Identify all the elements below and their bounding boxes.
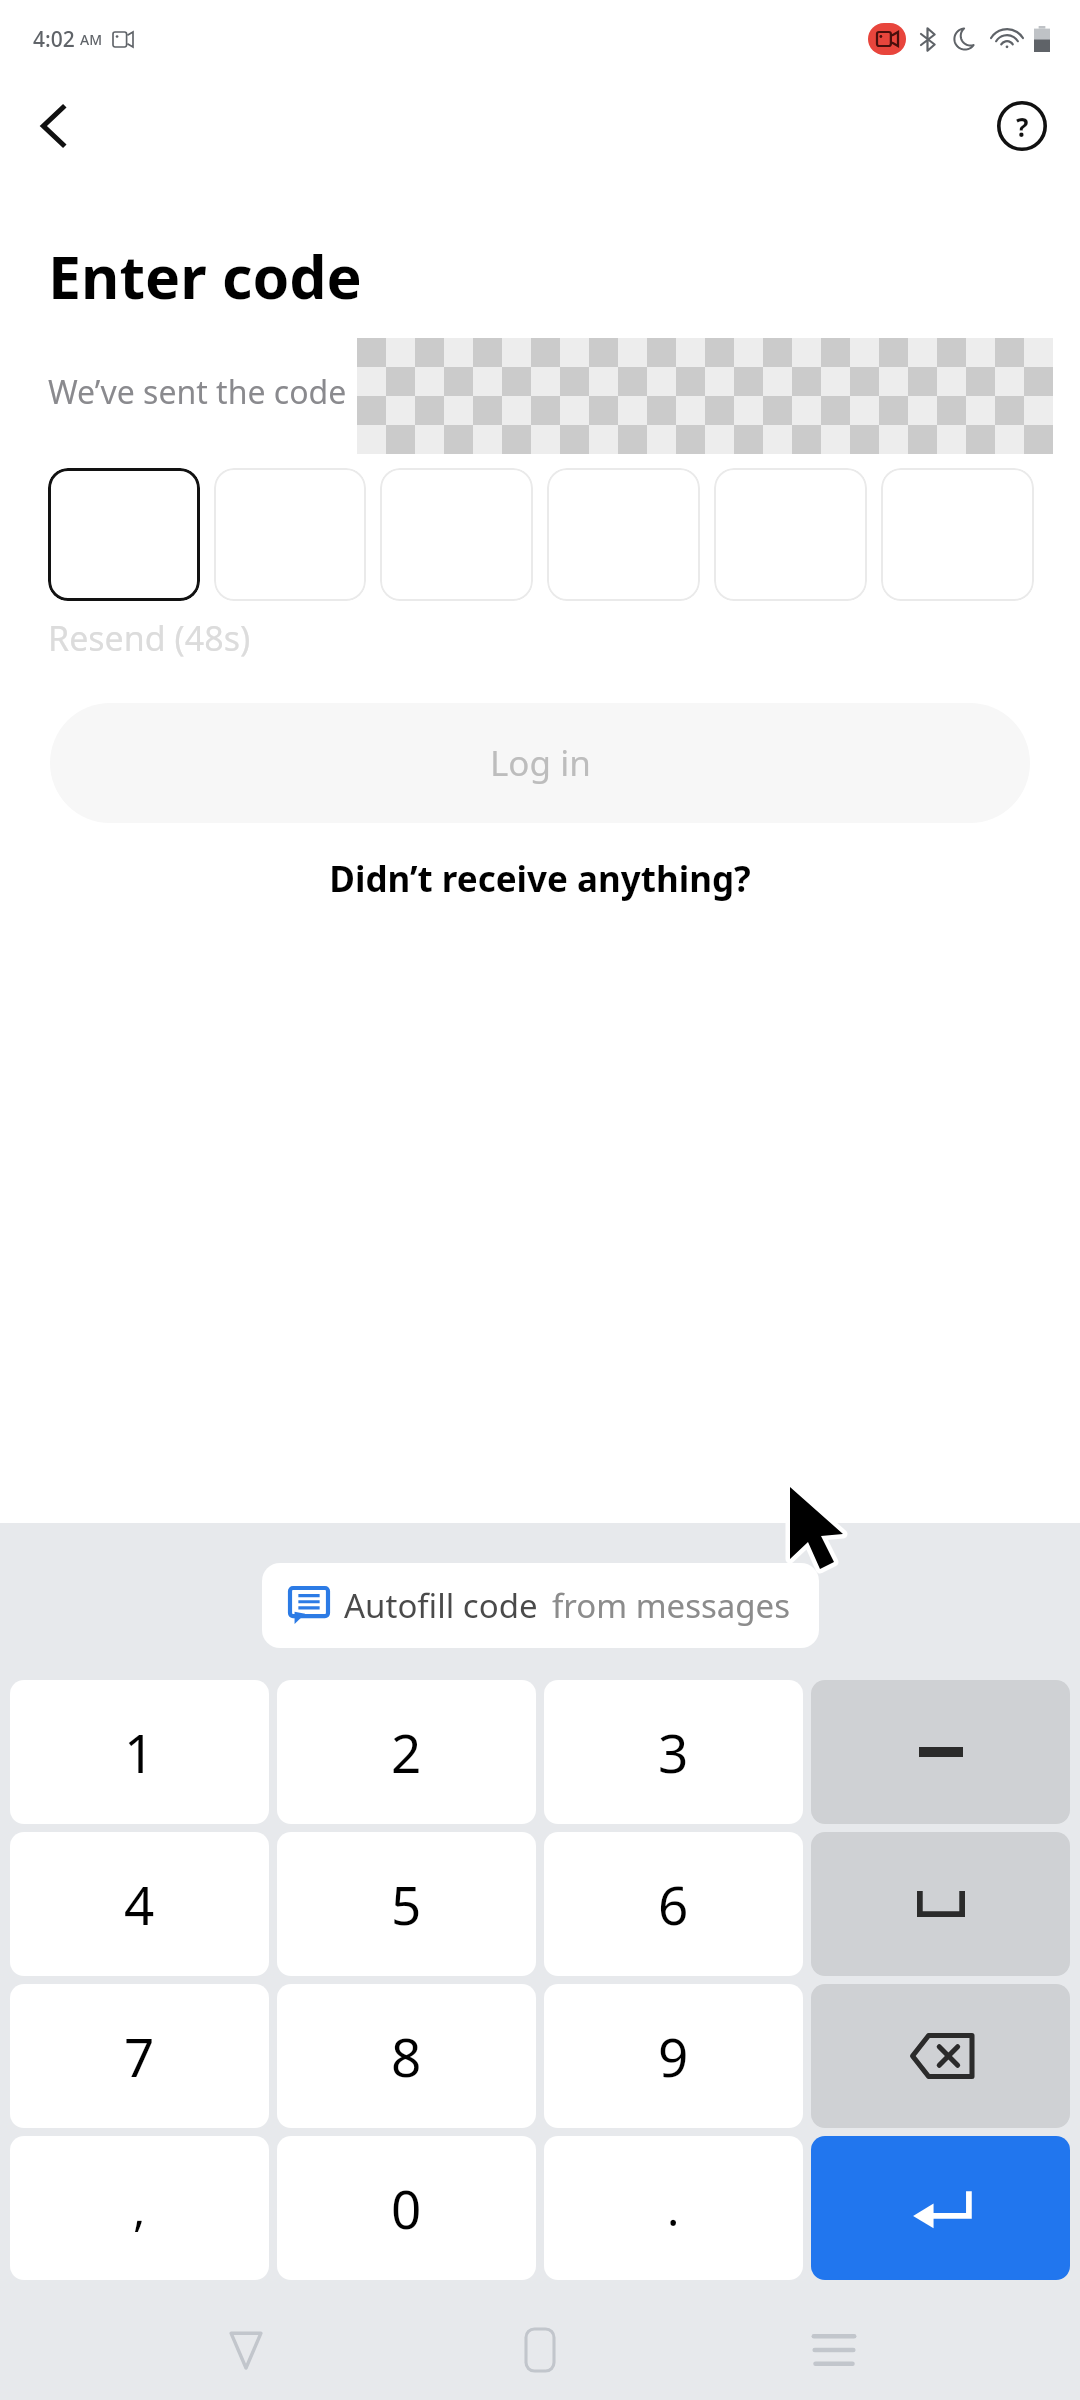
staticText: Enter code <box>48 236 362 316</box>
button[interactable]: 1 <box>10 1680 269 1824</box>
staticText: 1 <box>124 1716 155 1788</box>
button[interactable]: 9 <box>544 1984 803 2128</box>
button[interactable]: 4 <box>10 1832 269 1976</box>
staticText: from messages <box>552 1583 791 1628</box>
button[interactable]: Code digit 2 <box>214 468 366 601</box>
button[interactable]: Log in <box>50 703 1030 823</box>
button[interactable]: Code digit 1 <box>48 468 200 601</box>
staticText: 7 <box>124 2020 155 2092</box>
staticText: 4 <box>124 1868 155 1940</box>
staticText: , <box>133 2177 146 2240</box>
staticText: 2 <box>391 1716 422 1788</box>
button[interactable]: Back <box>20 92 88 160</box>
button[interactable]: 6 <box>544 1832 803 1976</box>
button[interactable]: Backspace <box>811 1984 1070 2128</box>
button[interactable]: Help <box>988 92 1056 160</box>
staticText: Log in <box>490 739 591 787</box>
staticText: AM <box>80 30 103 49</box>
staticText: 6 <box>658 1868 689 1940</box>
staticText: 0 <box>391 2172 422 2244</box>
button[interactable]: 0 <box>277 2136 536 2280</box>
staticText: Autofill code <box>344 1583 538 1628</box>
button[interactable]: Minus <box>811 1680 1070 1824</box>
staticText: 4:02 <box>33 25 75 54</box>
button[interactable]: 8 <box>277 1984 536 2128</box>
button[interactable]: Home <box>492 2302 588 2398</box>
button[interactable]: Space <box>811 1832 1070 1976</box>
button[interactable]: Enter <box>811 2136 1070 2280</box>
staticText: We’ve sent the code <box>48 370 347 414</box>
button[interactable]: 3 <box>544 1680 803 1824</box>
staticText: ? <box>1016 109 1029 144</box>
button[interactable]: 5 <box>277 1832 536 1976</box>
staticText: 3 <box>658 1716 689 1788</box>
staticText: Resend (48s) <box>48 615 251 661</box>
button[interactable]: Recents <box>786 2302 882 2398</box>
button[interactable]: Code digit 5 <box>714 468 867 601</box>
button[interactable]: 2 <box>277 1680 536 1824</box>
button[interactable]: , <box>10 2136 269 2280</box>
staticText: . <box>667 2177 680 2240</box>
staticText: 8 <box>391 2020 422 2092</box>
button[interactable]: Back <box>198 2302 294 2398</box>
button[interactable]: Didn’t receive anything? <box>0 855 1080 903</box>
staticText: Didn’t receive anything? <box>329 855 751 903</box>
button[interactable]: Code digit 4 <box>547 468 700 601</box>
staticText: 5 <box>391 1868 422 1940</box>
button[interactable]: Resend (48s) <box>48 615 251 661</box>
button[interactable]: Code digit 3 <box>380 468 533 601</box>
button[interactable]: . <box>544 2136 803 2280</box>
button[interactable]: Code digit 6 <box>881 468 1034 601</box>
button[interactable]: Autofill code <box>262 1563 819 1648</box>
button[interactable]: 7 <box>10 1984 269 2128</box>
staticText: 9 <box>658 2020 689 2092</box>
